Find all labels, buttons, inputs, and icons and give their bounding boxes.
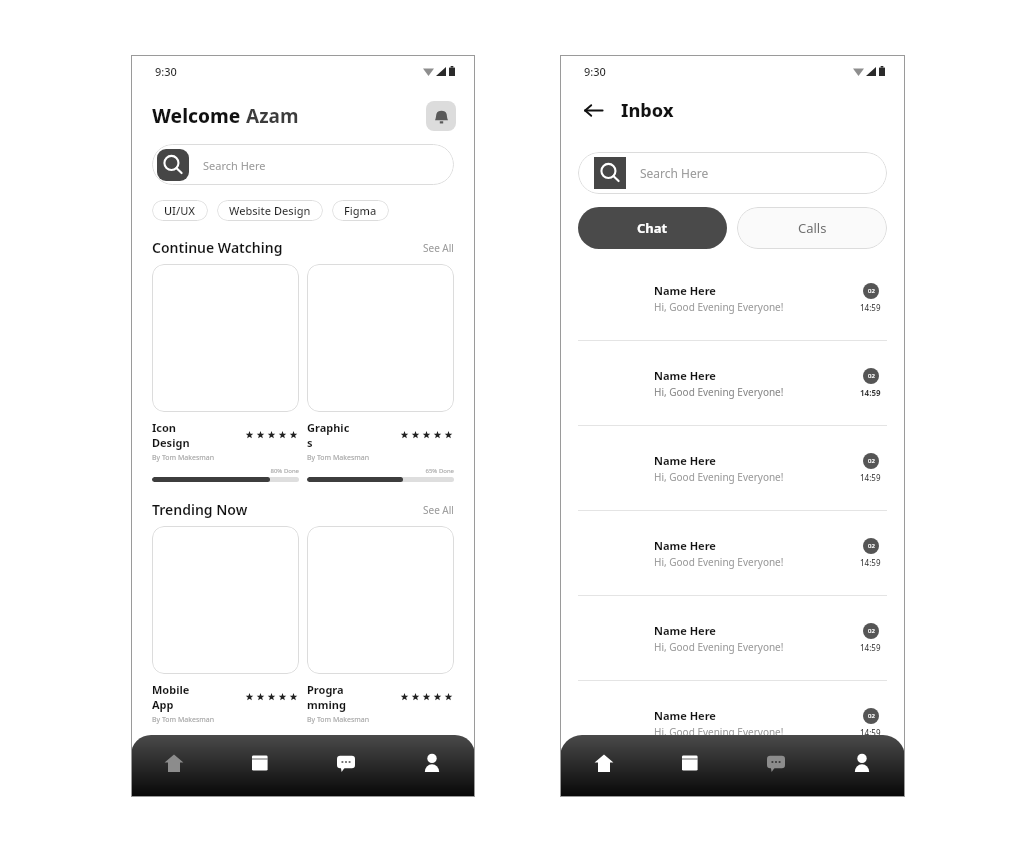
staticText: 14:59	[860, 557, 881, 568]
button[interactable]: Name Here	[578, 596, 887, 680]
button[interactable]: Messages	[303, 739, 389, 797]
button[interactable]: See All	[423, 241, 454, 255]
staticText: Calls	[798, 219, 827, 237]
staticText: 02	[868, 627, 875, 635]
button[interactable]: Figma	[332, 200, 389, 221]
button[interactable]: Notifications	[426, 101, 456, 131]
staticText: 02	[868, 457, 875, 465]
staticText: Azam	[246, 103, 299, 129]
staticText: Hi, Good Evening Everyone!	[654, 385, 784, 399]
staticText: 02	[868, 372, 875, 380]
button[interactable]: Profile	[819, 739, 905, 797]
staticText: 65% Done	[307, 467, 454, 475]
staticText: Chat	[637, 219, 668, 237]
staticText: Hi, Good Evening Everyone!	[654, 555, 784, 569]
staticText: Website Design	[229, 203, 311, 218]
staticText: 14:59	[860, 472, 881, 483]
staticText: By Tom Makesman	[307, 715, 370, 725]
staticText: Inbox	[621, 98, 674, 123]
button[interactable]: Graphics	[307, 264, 454, 482]
staticText: Name Here	[654, 368, 716, 383]
button[interactable]: Name Here	[578, 341, 887, 425]
button[interactable]: Name Here	[578, 681, 887, 765]
button[interactable]: Profile	[389, 739, 475, 797]
button[interactable]: Programming	[307, 526, 454, 725]
staticText: By Tom Makesman	[152, 453, 215, 463]
staticText: 9:30	[584, 64, 606, 79]
staticText: By Tom Makesman	[152, 715, 215, 725]
button[interactable]: Chat	[578, 207, 727, 249]
button[interactable]: Home	[560, 739, 647, 797]
staticText: Continue Watching	[152, 238, 423, 257]
staticText: Trending Now	[152, 500, 423, 519]
staticText: 9:30	[155, 64, 177, 79]
staticText: 80% Done	[152, 467, 299, 475]
button[interactable]: Messages	[733, 739, 819, 797]
staticText: Name Here	[654, 453, 716, 468]
button[interactable]: Mobile App	[152, 526, 299, 725]
staticText: UI/UX	[164, 203, 196, 218]
staticText: Name Here	[654, 538, 716, 553]
staticText: 14:59	[860, 642, 881, 653]
staticText: 14:59	[860, 727, 881, 738]
button[interactable]: Search Here	[152, 144, 454, 185]
staticText: Hi, Good Evening Everyone!	[654, 300, 784, 314]
button[interactable]: Home	[131, 739, 217, 797]
staticText: Name Here	[654, 283, 716, 298]
staticText: Figma	[344, 203, 377, 218]
staticText: Programming	[307, 682, 353, 712]
staticText: Graphics	[307, 420, 353, 450]
staticText: Hi, Good Evening Everyone!	[654, 725, 784, 739]
staticText: Name Here	[654, 708, 716, 723]
button[interactable]: See All	[423, 503, 454, 517]
staticText: Name Here	[654, 623, 716, 638]
staticText: 02	[868, 542, 875, 550]
button[interactable]: Name Here	[578, 256, 887, 340]
button[interactable]: Name Here	[578, 426, 887, 510]
button[interactable]: Library	[647, 739, 733, 797]
staticText: Mobile App	[152, 682, 198, 712]
staticText: Welcome	[152, 103, 246, 129]
button[interactable]: Search Here	[578, 152, 887, 194]
staticText: 02	[868, 712, 875, 720]
staticText: Icon Design	[152, 420, 198, 450]
staticText: See All	[423, 503, 454, 517]
staticText: 14:59	[860, 302, 881, 313]
button[interactable]: UI/UX	[152, 200, 208, 221]
staticText: By Tom Makesman	[307, 453, 370, 463]
button[interactable]: Website Design	[217, 200, 323, 221]
button[interactable]: Name Here	[578, 511, 887, 595]
staticText: 14:59	[860, 387, 881, 398]
button[interactable]: Library	[217, 739, 303, 797]
button[interactable]: Back	[578, 95, 608, 125]
staticText: Search Here	[203, 158, 266, 173]
staticText: Search Here	[640, 165, 709, 181]
staticText: See All	[423, 241, 454, 255]
button[interactable]: Icon Design	[152, 264, 299, 482]
staticText: Hi, Good Evening Everyone!	[654, 640, 784, 654]
button[interactable]: Calls	[737, 207, 887, 249]
staticText: 02	[868, 287, 875, 295]
staticText: Hi, Good Evening Everyone!	[654, 470, 784, 484]
